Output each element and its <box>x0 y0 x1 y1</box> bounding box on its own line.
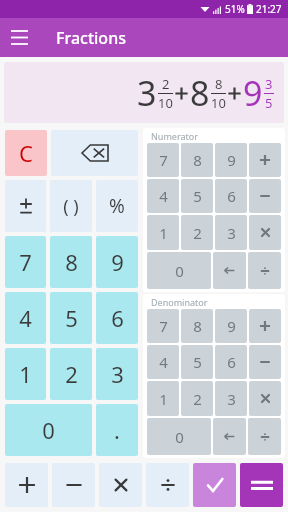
button[interactable]: Minus <box>249 179 281 213</box>
staticText: 6 <box>227 186 236 206</box>
staticText: 9 <box>227 316 236 336</box>
button[interactable]: Plus <box>249 143 281 177</box>
button[interactable]: 3 <box>215 381 247 416</box>
staticText: 4 <box>159 186 168 206</box>
staticText: 1 <box>159 223 168 243</box>
staticText: 8 <box>193 316 202 336</box>
button[interactable]: 8 <box>50 236 92 288</box>
button[interactable]: Times <box>249 215 281 250</box>
button[interactable]: 9 <box>96 236 138 288</box>
button[interactable]: 5 <box>181 345 213 379</box>
button[interactable]: 6 <box>96 292 138 344</box>
button[interactable]: 7 <box>147 309 179 343</box>
button[interactable]: 7 <box>147 143 179 177</box>
button[interactable]: Divide <box>248 418 281 455</box>
button[interactable]: 0 <box>5 404 92 456</box>
staticText: 0 <box>42 415 55 445</box>
button[interactable]: 3 <box>96 348 138 400</box>
staticText: 51% <box>225 2 245 16</box>
staticText: 21:27 <box>256 2 282 16</box>
button[interactable]: Backspace <box>51 130 138 176</box>
button[interactable]: Add <box>5 463 48 507</box>
staticText: 8 <box>190 70 210 116</box>
button[interactable]: Plus <box>249 309 281 343</box>
button[interactable]: 1 <box>5 348 46 400</box>
button[interactable]: 7 <box>5 236 46 288</box>
button[interactable]: ( ) <box>50 180 92 232</box>
staticText: 9 <box>111 247 124 277</box>
button[interactable]: 8 <box>181 143 213 177</box>
staticText: . <box>114 415 120 445</box>
staticText: 3 <box>227 223 236 243</box>
staticText: 3 <box>111 359 124 389</box>
button[interactable]: 5 <box>50 292 92 344</box>
button[interactable]: Divide <box>248 252 281 289</box>
button[interactable]: C <box>5 130 47 176</box>
staticText: C <box>19 138 33 168</box>
button[interactable]: 4 <box>147 179 179 213</box>
button[interactable]: 3 <box>215 215 247 250</box>
button[interactable]: Multiply <box>99 463 142 507</box>
staticText: 5 <box>265 94 273 112</box>
button[interactable]: 9 <box>215 309 247 343</box>
staticText: 7 <box>19 247 32 277</box>
staticText: Denominator <box>151 296 208 308</box>
button[interactable]: 6 <box>215 345 247 379</box>
button[interactable]: Plus minus <box>5 180 46 232</box>
staticText: 2 <box>193 389 202 409</box>
staticText: 3 <box>227 389 236 409</box>
staticText: 8 <box>65 247 78 277</box>
staticText: Numerator <box>151 130 198 142</box>
button[interactable]: 2 <box>181 381 213 416</box>
staticText: 6 <box>227 352 236 372</box>
button[interactable]: Equals <box>240 463 283 507</box>
button[interactable]: 4 <box>5 292 46 344</box>
button[interactable]: Backspace <box>213 252 246 289</box>
button[interactable]: Divide <box>146 463 189 507</box>
staticText: 1 <box>159 389 168 409</box>
staticText: 1 <box>19 359 32 389</box>
staticText: 7 <box>159 316 168 336</box>
button[interactable]: Times <box>249 381 281 416</box>
staticText: 9 <box>227 150 236 170</box>
staticText: 8 <box>193 150 202 170</box>
button[interactable]: 5 <box>181 179 213 213</box>
button[interactable]: Backspace <box>213 418 246 455</box>
staticText: 5 <box>65 303 78 333</box>
button[interactable]: 2 <box>181 215 213 250</box>
button[interactable]: Subtract <box>52 463 95 507</box>
staticText: ( ) <box>63 194 79 219</box>
staticText: 4 <box>19 303 32 333</box>
button[interactable]: Menu <box>0 18 39 57</box>
staticText: 4 <box>159 352 168 372</box>
staticText: 5 <box>193 352 202 372</box>
staticText: 0 <box>175 261 184 281</box>
staticText: 2 <box>162 75 170 93</box>
button[interactable]: 9 <box>215 143 247 177</box>
button[interactable]: Minus <box>249 345 281 379</box>
staticText: 2 <box>65 359 78 389</box>
button[interactable]: 4 <box>147 345 179 379</box>
staticText: 6 <box>111 303 124 333</box>
staticText: 0 <box>175 427 184 447</box>
button[interactable]: 1 <box>147 215 179 250</box>
staticText: 10 <box>211 94 226 112</box>
staticText: 10 <box>158 94 173 112</box>
staticText: 9 <box>243 70 263 116</box>
staticText: 5 <box>193 186 202 206</box>
staticText: 7 <box>159 150 168 170</box>
button[interactable]: 2 <box>50 348 92 400</box>
button[interactable]: 8 <box>181 309 213 343</box>
button[interactable]: 0 <box>147 252 211 289</box>
button[interactable]: % <box>96 180 138 232</box>
staticText: 3 <box>265 75 273 93</box>
button[interactable]: 6 <box>215 179 247 213</box>
staticText: 3 <box>137 70 157 116</box>
staticText: % <box>109 193 125 219</box>
staticText: 8 <box>215 75 223 93</box>
button[interactable]: . <box>96 404 138 456</box>
button[interactable]: 0 <box>147 418 211 455</box>
button[interactable]: Confirm <box>193 463 236 507</box>
button[interactable]: 1 <box>147 381 179 416</box>
staticText: 2 <box>193 223 202 243</box>
